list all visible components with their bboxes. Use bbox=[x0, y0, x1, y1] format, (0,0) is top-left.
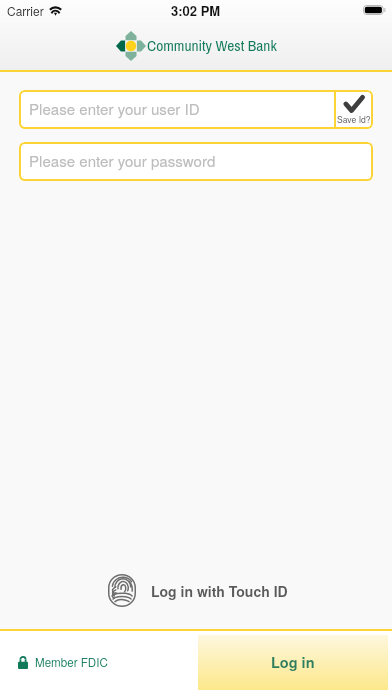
button[interactable]: Please enter your password bbox=[19, 142, 373, 181]
staticText: Member FDIC bbox=[35, 654, 108, 671]
staticText: Save Id? bbox=[337, 113, 371, 125]
staticText: Please enter your password bbox=[29, 150, 216, 172]
staticText: Carrier bbox=[7, 2, 44, 19]
staticText: Log in bbox=[271, 652, 315, 673]
staticText: Community West Bank bbox=[147, 35, 277, 56]
button[interactable]: Save Id bbox=[336, 92, 371, 127]
button[interactable]: Log in with Touch ID bbox=[2, 574, 392, 607]
staticText: 3:02 PM bbox=[171, 1, 221, 20]
button[interactable]: Please enter your user ID bbox=[19, 90, 373, 129]
button[interactable]: Member FDIC bbox=[18, 655, 108, 672]
button[interactable]: Log in bbox=[198, 635, 388, 690]
staticText: Please enter your user ID bbox=[29, 98, 334, 120]
staticText: Log in with Touch ID bbox=[151, 581, 288, 601]
